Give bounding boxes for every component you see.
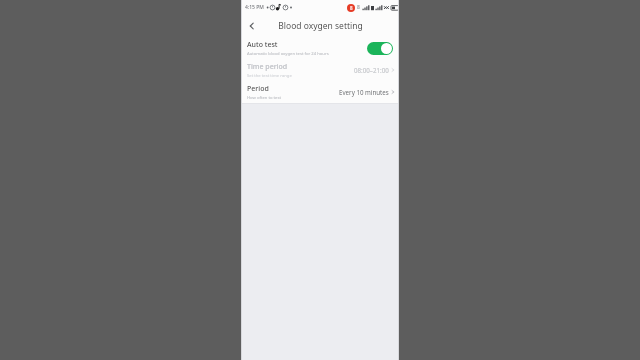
staticText: Time period xyxy=(247,62,288,72)
staticText: 08:00–21:00 xyxy=(354,66,389,74)
staticText: 8 xyxy=(357,4,360,11)
staticText: Blood oxygen setting xyxy=(278,20,363,32)
button[interactable]: Auto test xyxy=(241,37,399,59)
staticText: Every 10 minutes xyxy=(339,88,389,96)
button[interactable]: Auto test, on xyxy=(367,42,393,55)
staticText: How often to test xyxy=(247,95,281,101)
staticText: 4:15 PM xyxy=(245,4,264,11)
button[interactable]: Back xyxy=(244,18,260,34)
button[interactable]: Time period xyxy=(241,59,399,81)
staticText: Auto test xyxy=(247,40,278,50)
button[interactable]: Period xyxy=(241,81,399,103)
staticText: 8 xyxy=(350,5,353,11)
staticText: Automatic blood oxygen test for 24 hours xyxy=(247,51,329,57)
staticText: Period xyxy=(247,84,269,94)
staticText: Set the test time range xyxy=(247,73,292,79)
